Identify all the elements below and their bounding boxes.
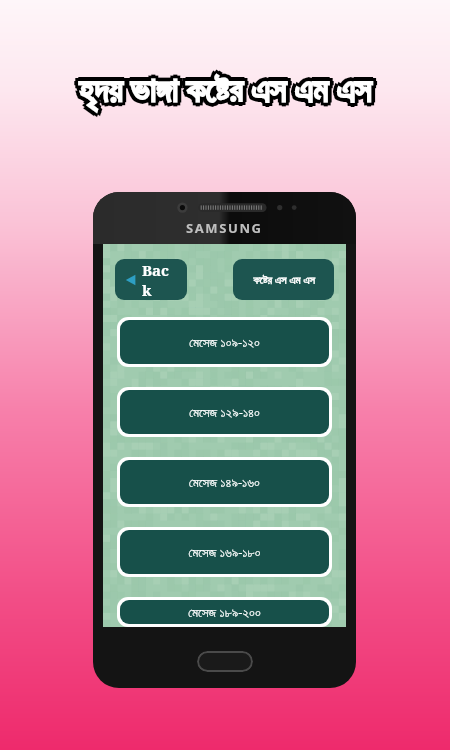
staticText: Back — [142, 260, 178, 300]
staticText: হৃদয় ভাঙ্গা কষ্টের এস এম এস — [76, 67, 368, 112]
staticText: মেসেজ ১২৯-১৪০ — [189, 403, 260, 421]
button[interactable]: মেসেজ ১২৯-১৪০ — [120, 390, 329, 434]
staticText: হৃদয় ভাঙ্গা কষ্টের এস এম এস — [82, 64, 374, 109]
staticText: হৃদয় ভাঙ্গা কষ্টের এস এম এস — [76, 64, 368, 109]
staticText: মেসেজ ১৮৯-২০০ — [188, 603, 261, 621]
staticText: হৃদয় ভাঙ্গা কষ্টের এস এম এস — [75, 67, 367, 112]
staticText: হৃদয় ভাঙ্গা কষ্টের এস এম এস — [79, 63, 371, 108]
staticText: মেসেজ ১০৯-১২০ — [189, 333, 260, 351]
button[interactable]: Back — [115, 259, 187, 300]
staticText: SAMSUNG — [186, 219, 263, 237]
staticText: হৃদয় ভাঙ্গা কষ্টের এস এম এস — [76, 70, 368, 115]
staticText: হৃদয় ভাঙ্গা কষ্টের এস এম এস — [79, 70, 371, 115]
staticText: মেসেজ ১৬৯-১৮০ — [188, 543, 261, 561]
staticText: হৃদয় ভাঙ্গা কষ্টের এস এম এস — [82, 70, 374, 115]
staticText: হৃদয় ভাঙ্গা কষ্টের এস এম এস — [82, 67, 374, 112]
staticText: হৃদয় ভাঙ্গা কষ্টের এস এম এস — [79, 71, 371, 116]
staticText: মেসেজ ১৪৯-১৬০ — [189, 473, 260, 491]
button[interactable]: মেসেজ ১৮৯-২০০ — [120, 600, 329, 624]
button[interactable]: মেসেজ ১৬৯-১৮০ — [120, 530, 329, 574]
button[interactable]: মেসেজ ১০৯-১২০ — [120, 320, 329, 364]
staticText: হৃদয় ভাঙ্গা কষ্টের এস এম এস — [83, 67, 375, 112]
button[interactable]: মেসেজ ১৪৯-১৬০ — [120, 460, 329, 504]
staticText: হৃদয় ভাঙ্গা কষ্টের এস এম এস — [79, 64, 371, 109]
button[interactable]: কষ্টের এস এম এস — [233, 259, 334, 300]
staticText: কষ্টের এস এম এস — [253, 272, 315, 287]
other: Home — [197, 651, 253, 672]
staticText: হৃদয় ভাঙ্গা কষ্টের এস এম এস — [79, 67, 371, 112]
